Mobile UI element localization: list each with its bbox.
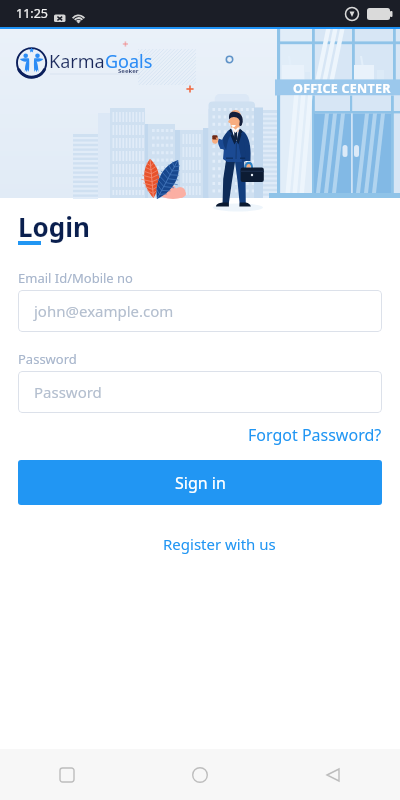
staticText: Password bbox=[18, 350, 77, 368]
button[interactable]: Home bbox=[176, 751, 224, 799]
staticText: Sign in bbox=[175, 472, 226, 494]
staticText: Login bbox=[18, 209, 90, 244]
staticText: 11:25 bbox=[16, 5, 48, 22]
button[interactable]: Back bbox=[309, 751, 357, 799]
button[interactable]: Forgot Password? bbox=[248, 424, 382, 446]
staticText: john@example.com bbox=[34, 301, 174, 321]
staticText: Seeker bbox=[118, 67, 139, 75]
staticText: OFFICE CENTER bbox=[293, 80, 391, 97]
button[interactable]: john@example.com bbox=[18, 290, 382, 332]
button[interactable]: Recent apps bbox=[43, 751, 91, 799]
button[interactable]: Sign in bbox=[18, 460, 382, 505]
staticText: Password bbox=[34, 382, 102, 402]
button[interactable]: Password bbox=[18, 371, 382, 413]
staticText: Karma bbox=[49, 49, 105, 74]
staticText: Email Id/Mobile no bbox=[18, 269, 133, 287]
button[interactable]: Register with us bbox=[163, 534, 276, 554]
staticText: Goals bbox=[105, 49, 153, 74]
